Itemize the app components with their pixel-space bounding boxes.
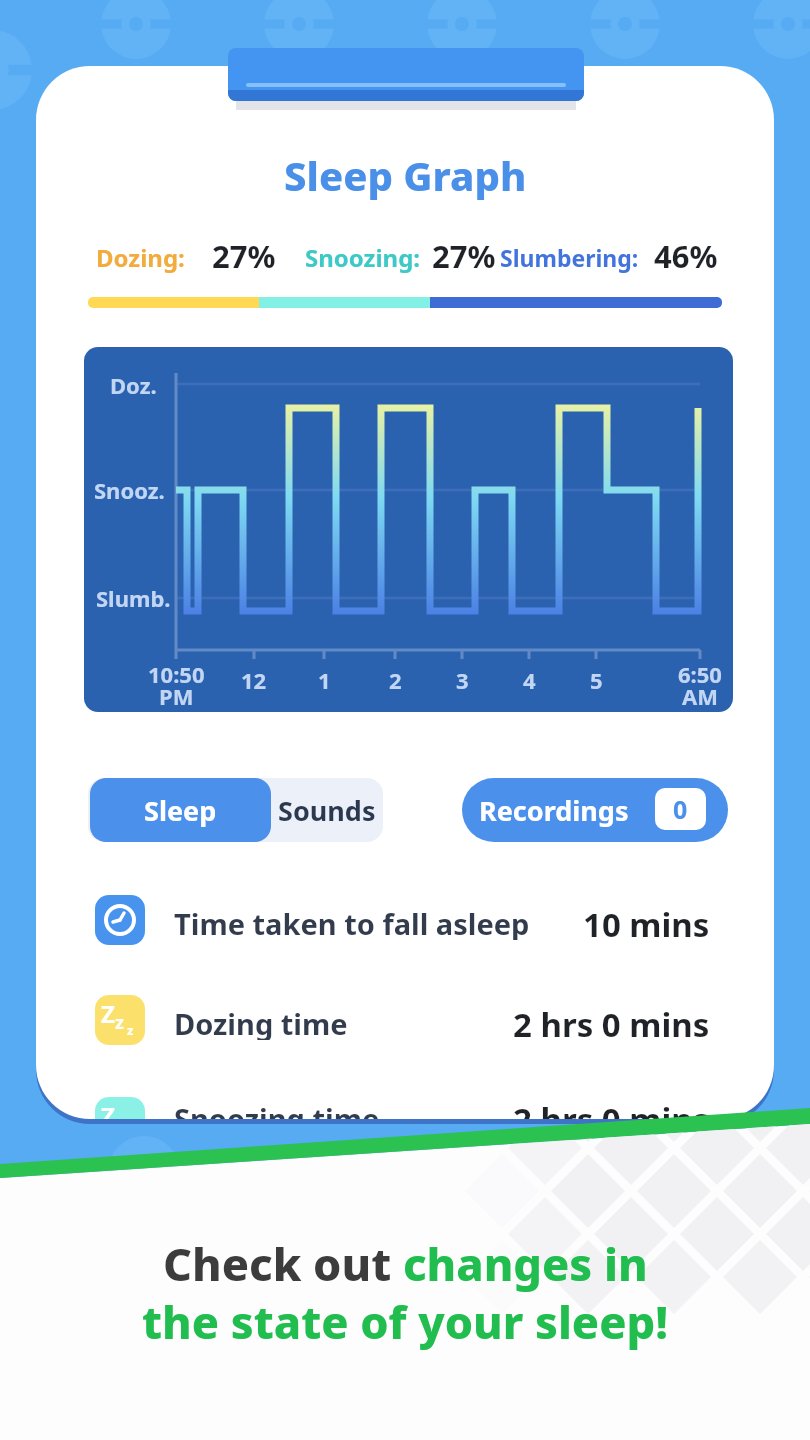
staticText: Doz. xyxy=(110,370,157,400)
staticText: z xyxy=(115,1010,124,1035)
staticText: PM xyxy=(159,681,194,711)
staticText: 2 hrs 0 mins xyxy=(513,1097,710,1119)
staticText: the state of your sleep! xyxy=(142,1291,669,1351)
staticText: Z xyxy=(101,997,115,1030)
staticText: 12 xyxy=(241,665,267,695)
staticText: Slumb. xyxy=(96,583,171,613)
staticText: Sleep xyxy=(144,792,217,829)
staticText: 2 hrs 0 mins xyxy=(513,1002,710,1042)
staticText: 1 xyxy=(318,665,331,695)
staticText: z xyxy=(127,1021,134,1039)
staticText: 10 mins xyxy=(583,902,710,942)
staticText: Snoozing: xyxy=(305,241,421,274)
staticText: Slumbering: xyxy=(500,242,639,273)
button[interactable]: Sleep xyxy=(90,778,271,842)
staticText: 27% xyxy=(432,235,496,277)
staticText: Check out changes in xyxy=(163,1233,648,1293)
staticText: 2 xyxy=(389,665,402,695)
staticText: 27% xyxy=(212,235,276,277)
staticText: 10:50 xyxy=(148,659,205,689)
staticText: 3 xyxy=(456,665,469,695)
staticText: Z xyxy=(101,1099,115,1119)
staticText: Snoozing time xyxy=(174,1099,380,1119)
staticText: AM xyxy=(682,681,718,711)
staticText: Snooz. xyxy=(94,475,165,505)
staticText: Dozing: xyxy=(96,241,185,274)
staticText: 46% xyxy=(654,235,718,277)
staticText: 4 xyxy=(523,665,536,695)
staticText: 5 xyxy=(590,665,603,695)
staticText: Recordings xyxy=(479,792,629,829)
staticText: Dozing time xyxy=(174,1004,348,1040)
staticText: Sleep Graph xyxy=(284,148,527,202)
staticText: Time taken to fall asleep xyxy=(174,904,530,940)
staticText: 6:50 xyxy=(678,659,722,689)
button[interactable]: Recordings xyxy=(462,778,728,842)
staticText: Sounds xyxy=(278,792,376,829)
button[interactable]: Sounds xyxy=(271,778,383,842)
staticText: 0 xyxy=(673,792,688,826)
